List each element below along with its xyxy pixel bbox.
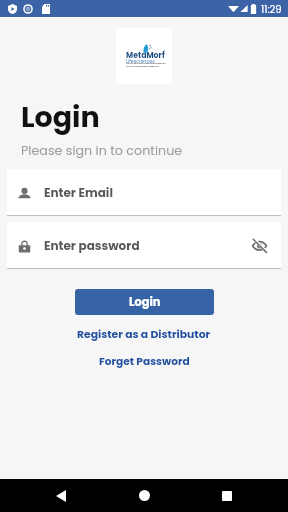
button[interactable]: Forget Password (0, 354, 288, 369)
staticText: Enter Email (44, 184, 281, 201)
staticText: Login (21, 97, 100, 137)
staticText: 11:29 (261, 2, 282, 16)
staticText: MetaMorf (126, 50, 165, 61)
button[interactable]: Login (75, 289, 214, 315)
button[interactable]: Show password (247, 233, 271, 257)
staticText: Please sign in to continue (21, 142, 183, 160)
staticText: AN ALLIANCE GROUP COMPANY (126, 65, 159, 68)
staticText: AN ISO 9001:2015 CERTIFIED COMPANY (126, 62, 166, 65)
staticText: Enter password (44, 237, 247, 254)
staticText: Register as a Distributor (77, 327, 211, 342)
button[interactable]: Recent apps (205, 479, 249, 512)
staticText: Login (129, 294, 161, 310)
button[interactable]: Enter Email (7, 169, 281, 215)
staticText: Forget Password (99, 354, 190, 369)
button[interactable]: Enter password (7, 222, 281, 268)
button[interactable]: Register as a Distributor (0, 327, 288, 342)
button[interactable]: Home (122, 479, 166, 512)
button[interactable]: Back (39, 479, 83, 512)
staticText: Lifesciences (126, 58, 155, 65)
